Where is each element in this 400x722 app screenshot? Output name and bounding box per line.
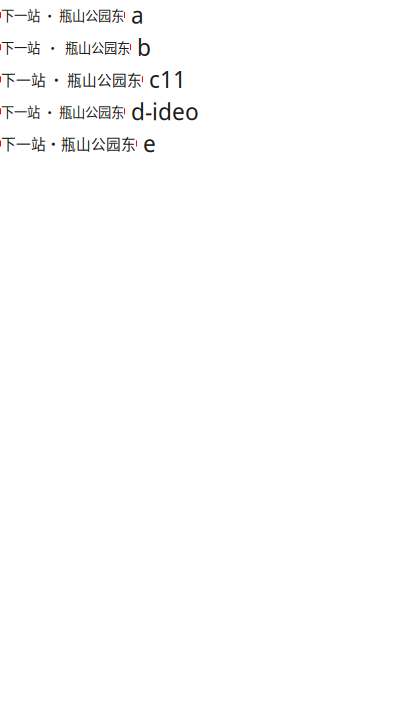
staticText: 下一站 · 瓶山公园东 <box>1 5 124 25</box>
staticText: 下一站 · 瓶山公园东 <box>1 102 124 121</box>
staticText: d-ideo <box>125 96 199 126</box>
staticText: b <box>131 32 151 62</box>
staticText: c11 <box>143 64 186 94</box>
staticText: 下一站 · 瓶山公园东 <box>1 69 142 90</box>
staticText: 下一站 · 瓶山公园东 <box>1 37 130 57</box>
staticText: a <box>125 0 144 30</box>
staticText: e <box>137 128 156 158</box>
staticText: 下一站·瓶山公园东 <box>1 133 136 154</box>
